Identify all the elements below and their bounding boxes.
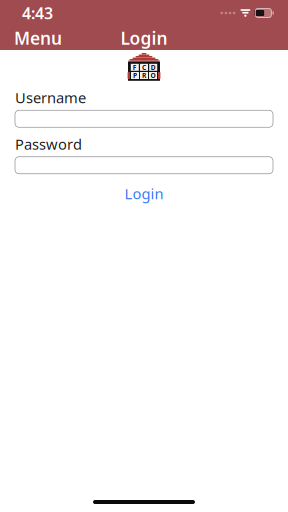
staticText: C — [142, 63, 146, 72]
staticText: Username — [15, 88, 86, 107]
staticText: Menu — [14, 26, 62, 49]
staticText: 4:43 — [22, 2, 53, 24]
staticText: Login — [124, 184, 163, 203]
button[interactable]: Menu — [0, 22, 76, 53]
button[interactable]: Login — [108, 179, 179, 208]
staticText: F — [133, 63, 137, 72]
staticText: O — [150, 71, 155, 80]
staticText: Login — [120, 26, 167, 49]
staticText: P — [133, 71, 137, 80]
staticText: D — [151, 63, 156, 72]
staticText: R — [142, 71, 146, 80]
staticText: Password — [15, 134, 82, 154]
